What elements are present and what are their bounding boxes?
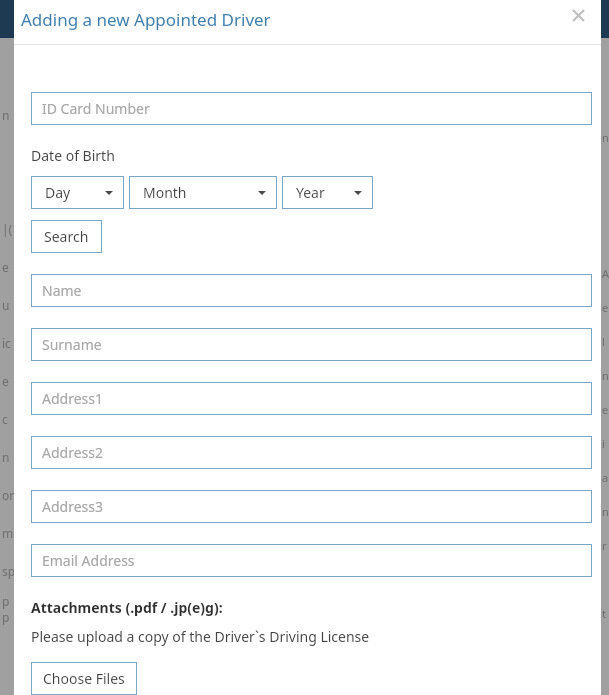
staticText: n [602, 504, 609, 519]
staticText: sp [2, 563, 16, 579]
staticText: m [2, 525, 14, 541]
staticText: ID Card Number [42, 99, 150, 118]
staticText: Please upload a copy of the Driver`s Dri… [31, 627, 370, 646]
button[interactable]: Month [129, 176, 277, 209]
staticText: |( [2, 221, 13, 237]
staticText: Month [143, 183, 187, 202]
button[interactable]: Close [567, 4, 589, 26]
staticText: Attachments (.pdf / .jp(e)g): [31, 598, 223, 617]
button[interactable]: Name [31, 274, 592, 307]
button[interactable]: Year [282, 176, 373, 209]
staticText: or [2, 487, 15, 503]
button[interactable]: Search [31, 220, 102, 253]
button[interactable]: Day [31, 176, 124, 209]
staticText: n [2, 107, 10, 123]
button[interactable]: Email Address [31, 544, 592, 577]
button[interactable]: Address2 [31, 436, 592, 469]
staticText: Address2 [42, 443, 103, 462]
staticText: Name [42, 281, 82, 300]
staticText: n [602, 130, 609, 145]
staticText: u [2, 297, 10, 313]
staticText: pp [2, 593, 16, 625]
staticText: Year [296, 183, 325, 202]
staticText: e [602, 402, 609, 417]
staticText: n [602, 368, 609, 383]
staticText: A [602, 266, 609, 281]
staticText: Surname [42, 335, 102, 354]
button[interactable]: Surname [31, 328, 592, 361]
staticText: Address3 [42, 497, 103, 516]
button[interactable]: ID Card Number [31, 92, 592, 125]
staticText: Date of Birth [31, 146, 115, 165]
staticText: i [602, 436, 605, 451]
staticText: n [2, 449, 10, 465]
button[interactable]: Address3 [31, 490, 592, 523]
staticText: c [2, 411, 8, 427]
staticText: ic [2, 335, 11, 351]
staticText: e [602, 300, 609, 315]
staticText: t [602, 606, 606, 621]
button[interactable]: Choose Files [31, 662, 137, 695]
staticText: Adding a new Appointed Driver [21, 8, 271, 31]
staticText: a [602, 470, 609, 485]
staticText: Email Address [42, 551, 135, 570]
button[interactable]: Address1 [31, 382, 592, 415]
staticText: e [2, 259, 9, 275]
staticText: r [602, 538, 607, 553]
staticText: Day [45, 183, 71, 202]
staticText: Address1 [42, 389, 103, 408]
staticText: Search [44, 227, 89, 246]
staticText: Choose Files [43, 669, 125, 688]
staticText: e [2, 373, 9, 389]
staticText: l [602, 334, 605, 349]
